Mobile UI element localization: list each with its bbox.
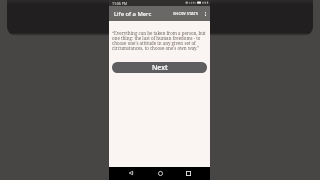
button[interactable]: Home (155, 168, 165, 178)
staticText: 11:06 PM (112, 1, 127, 6)
staticText: “Everything can be taken from a person, … (112, 30, 207, 51)
button[interactable]: Back (126, 168, 136, 178)
staticText: Next (152, 63, 168, 72)
button[interactable]: Recent apps (183, 168, 193, 178)
button[interactable]: SHOW STATS (172, 11, 200, 17)
staticText: Life of a Merc (114, 10, 152, 18)
button[interactable]: Next (112, 62, 207, 73)
button[interactable]: More options (200, 6, 210, 21)
staticText: SHOW STATS (173, 11, 199, 17)
